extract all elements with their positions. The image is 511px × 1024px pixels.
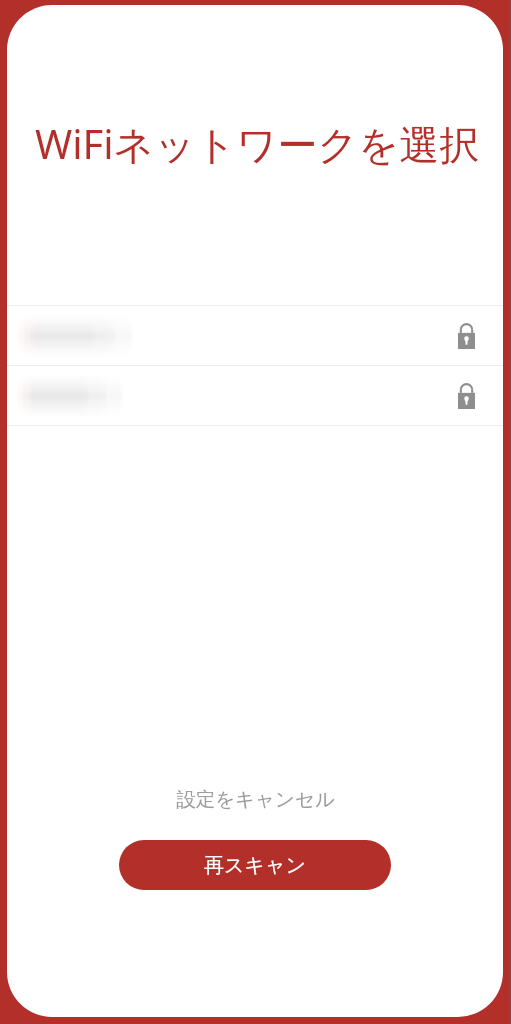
other: Secured network bbox=[458, 383, 475, 409]
button[interactable]: 再スキャン bbox=[119, 840, 391, 890]
button[interactable]: Secured network bbox=[7, 366, 503, 425]
staticText: 再スキャン bbox=[204, 853, 306, 878]
staticText: WiFiネットワークを選択 bbox=[35, 116, 480, 171]
button[interactable]: Secured network bbox=[7, 306, 503, 365]
staticText: 設定をキャンセル bbox=[176, 787, 335, 812]
button[interactable]: 設定をキャンセル bbox=[158, 781, 353, 818]
other: Secured network bbox=[458, 323, 475, 349]
